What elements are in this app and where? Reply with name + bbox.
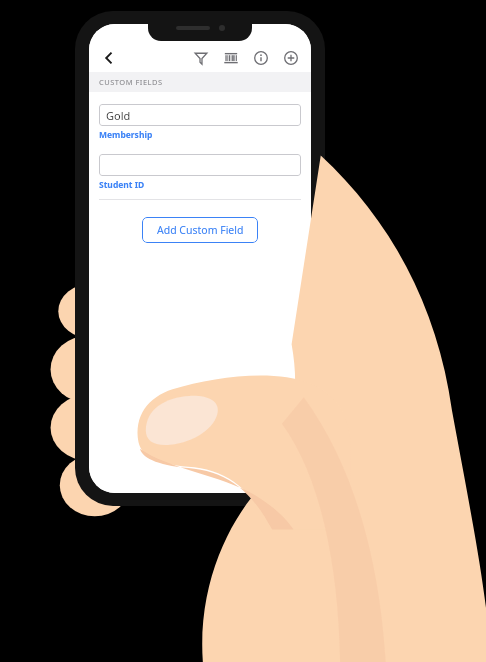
staticText: Student ID <box>99 179 145 191</box>
button[interactable]: Scan barcode <box>219 46 243 70</box>
staticText: Add Custom Field <box>157 223 244 237</box>
staticText: Membership <box>99 129 153 141</box>
button[interactable]: Filter <box>189 46 213 70</box>
button[interactable]: Gold <box>99 104 301 126</box>
button[interactable]: Information <box>249 46 273 70</box>
button[interactable]: Back <box>97 46 121 70</box>
staticText: CUSTOM FIELDS <box>99 77 163 87</box>
button[interactable] <box>99 154 301 176</box>
button[interactable]: Add <box>279 46 303 70</box>
staticText: Gold <box>106 108 131 123</box>
button[interactable]: Add Custom Field <box>142 217 258 243</box>
